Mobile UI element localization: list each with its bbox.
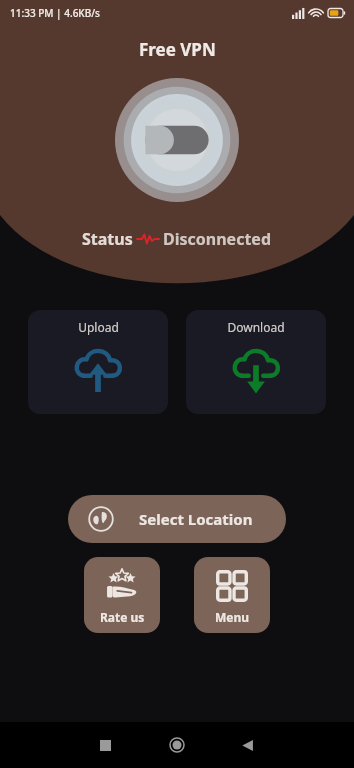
button[interactable]: Connect VPN toggle, off: [115, 78, 239, 202]
button[interactable]: Recent apps: [70, 722, 141, 768]
staticText: Rate us: [100, 609, 145, 625]
staticText: Menu: [215, 609, 250, 625]
button[interactable]: Upload: [28, 310, 168, 414]
staticText: 11:33 PM | 4.6KB/s: [10, 6, 100, 20]
button[interactable]: Download: [186, 310, 326, 414]
staticText: Status: [82, 228, 133, 250]
button[interactable]: Select Location: [68, 495, 286, 543]
staticText: Free VPN: [139, 38, 216, 61]
staticText: Select Location: [139, 509, 253, 529]
button[interactable]: Home: [141, 722, 212, 768]
button[interactable]: Back: [212, 722, 283, 768]
staticText: Disconnected: [163, 228, 272, 250]
button[interactable]: Menu: [194, 557, 270, 633]
staticText: Download: [227, 319, 285, 335]
button[interactable]: Rate us: [84, 557, 160, 633]
staticText: Upload: [78, 319, 119, 335]
